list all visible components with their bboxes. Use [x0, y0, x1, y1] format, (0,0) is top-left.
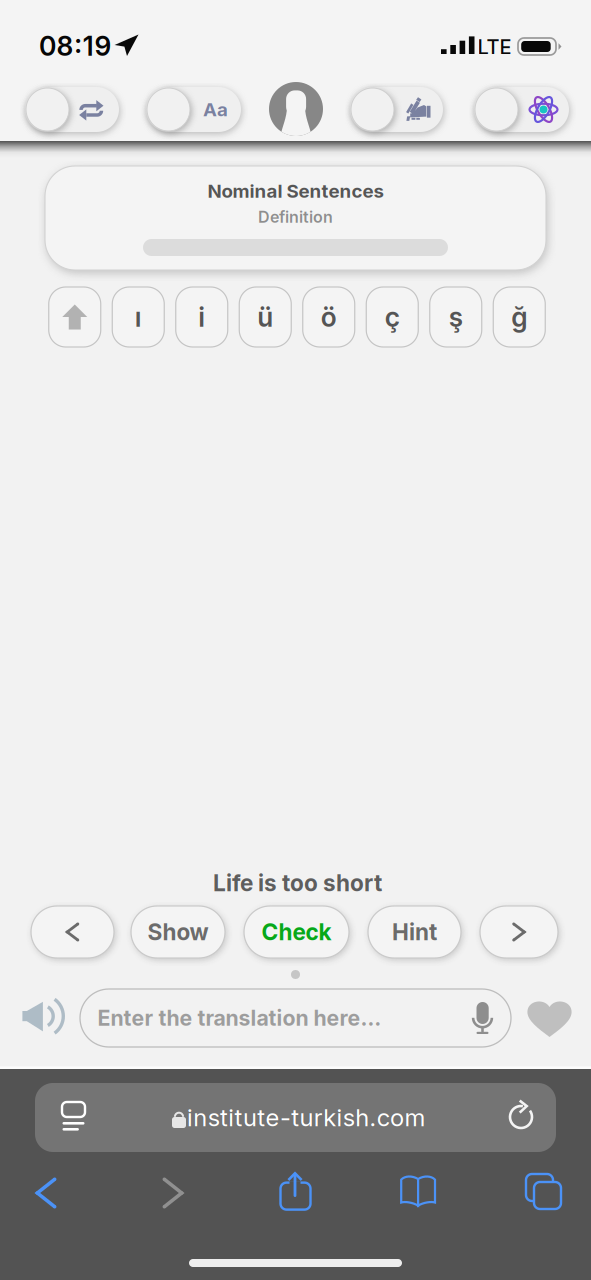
button[interactable]: Favourite: [527, 999, 572, 1037]
staticText: Nominal Sentences: [207, 180, 383, 202]
button[interactable]: Back: [22, 1169, 70, 1217]
button[interactable]: Handwriting: [350, 87, 443, 132]
button[interactable]: ç: [366, 287, 418, 347]
button[interactable]: Enter the translation here: [80, 989, 511, 1047]
button[interactable]: Tabs: [526, 1174, 561, 1209]
staticText: Aa: [203, 98, 228, 120]
button[interactable]: Account: [269, 82, 323, 136]
button[interactable]: Check: [244, 906, 349, 958]
button[interactable]: Shift: [49, 287, 101, 347]
button[interactable]: Show: [131, 906, 225, 958]
staticText: ş: [449, 301, 463, 333]
button[interactable]: ı: [112, 287, 164, 347]
staticText: Hint: [392, 919, 437, 945]
staticText: i: [198, 301, 205, 333]
button[interactable]: Play audio: [21, 1000, 65, 1034]
button[interactable]: ş: [430, 287, 482, 347]
button[interactable]: Share: [279, 1172, 312, 1212]
button[interactable]: Forward: [149, 1169, 197, 1217]
button[interactable]: Reload: [506, 1100, 538, 1134]
staticText: Enter the translation here…: [97, 1005, 381, 1031]
button[interactable]: ö: [303, 287, 355, 347]
button[interactable]: i: [176, 287, 228, 347]
button[interactable]: Address: [35, 1083, 556, 1152]
button[interactable]: Bookmarks: [400, 1175, 436, 1207]
button[interactable]: Shuffle: [25, 87, 119, 132]
button[interactable]: ü: [239, 287, 291, 347]
button[interactable]: Science: [474, 87, 569, 132]
button[interactable]: Hint: [368, 906, 461, 958]
staticText: institute-turkish.com: [187, 1103, 425, 1132]
staticText: LTE: [477, 35, 511, 59]
staticText: 08:19: [39, 30, 111, 62]
staticText: ı: [135, 301, 142, 333]
staticText: Definition: [258, 208, 333, 226]
staticText: Check: [261, 919, 331, 945]
staticText: ç: [385, 301, 400, 333]
button[interactable]: Text size: [146, 87, 241, 132]
staticText: Life is too short: [213, 870, 382, 896]
button[interactable]: Page settings: [56, 1102, 90, 1132]
staticText: ö: [321, 301, 337, 333]
button[interactable]: Next: [480, 906, 558, 958]
staticText: ü: [257, 301, 273, 333]
staticText: Show: [147, 919, 208, 945]
button[interactable]: ğ: [493, 287, 545, 347]
button[interactable]: Previous: [31, 906, 114, 958]
staticText: ğ: [511, 301, 527, 333]
